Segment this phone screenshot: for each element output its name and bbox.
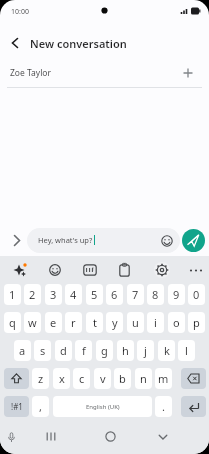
- staticText: 4: [70, 287, 77, 302]
- staticText: 9: [173, 287, 180, 302]
- button[interactable]: [155, 263, 169, 277]
- staticText: d: [60, 343, 67, 358]
- button[interactable]: i: [147, 312, 164, 333]
- button[interactable]: w: [24, 312, 41, 333]
- staticText: !#1: [11, 401, 23, 412]
- staticText: Hey, what's up?: [38, 235, 93, 245]
- button[interactable]: [83, 264, 97, 276]
- button[interactable]: 3: [45, 284, 62, 305]
- staticText: e: [50, 315, 57, 330]
- staticText: English (UK): [86, 403, 120, 411]
- staticText: 0: [193, 287, 200, 302]
- button[interactable]: ,: [32, 396, 49, 417]
- button[interactable]: f: [75, 340, 92, 361]
- staticText: x: [59, 371, 65, 386]
- staticText: .: [162, 399, 165, 414]
- staticText: m: [158, 371, 169, 386]
- button[interactable]: x: [53, 368, 70, 389]
- staticText: r: [71, 315, 76, 330]
- staticText: s: [40, 343, 46, 358]
- button[interactable]: h: [117, 340, 134, 361]
- button[interactable]: Hey, what's up?: [27, 228, 180, 253]
- button[interactable]: 6: [106, 284, 123, 305]
- button[interactable]: z: [32, 368, 49, 389]
- button[interactable]: 1: [4, 284, 21, 305]
- button[interactable]: a: [14, 340, 31, 361]
- button[interactable]: 5: [86, 284, 103, 305]
- button[interactable]: r: [65, 312, 82, 333]
- staticText: 8: [152, 287, 159, 302]
- button[interactable]: v: [94, 368, 111, 389]
- button[interactable]: p: [188, 312, 205, 333]
- staticText: i: [154, 315, 157, 330]
- staticText: 2: [29, 287, 36, 302]
- button[interactable]: [183, 68, 193, 78]
- staticText: w: [28, 315, 37, 330]
- button[interactable]: [7, 432, 16, 444]
- button[interactable]: 8: [147, 284, 164, 305]
- button[interactable]: [13, 263, 27, 277]
- button[interactable]: [4, 368, 29, 389]
- staticText: b: [119, 371, 126, 386]
- staticText: v: [100, 371, 106, 386]
- button[interactable]: !#1: [4, 396, 29, 417]
- button[interactable]: [12, 234, 22, 247]
- staticText: k: [164, 343, 170, 358]
- staticText: 7: [132, 287, 139, 302]
- button[interactable]: .: [155, 396, 172, 417]
- staticText: n: [140, 371, 147, 386]
- button[interactable]: t: [86, 312, 103, 333]
- button[interactable]: c: [73, 368, 90, 389]
- staticText: 5: [91, 287, 98, 302]
- staticText: New conversation: [30, 36, 127, 51]
- button[interactable]: y: [106, 312, 123, 333]
- button[interactable]: [105, 431, 116, 442]
- button[interactable]: k: [158, 340, 175, 361]
- button[interactable]: 7: [127, 284, 144, 305]
- staticText: 1: [9, 287, 16, 302]
- button[interactable]: g: [96, 340, 113, 361]
- staticText: Zoe Taylor: [10, 67, 52, 79]
- button[interactable]: [182, 229, 205, 252]
- button[interactable]: 2: [24, 284, 41, 305]
- staticText: t: [93, 315, 97, 330]
- button[interactable]: m: [155, 368, 172, 389]
- staticText: j: [144, 343, 147, 358]
- staticText: 6: [111, 287, 118, 302]
- button[interactable]: [158, 434, 168, 441]
- button[interactable]: 9: [168, 284, 185, 305]
- button[interactable]: [181, 368, 206, 389]
- staticText: q: [9, 315, 16, 330]
- button[interactable]: [46, 432, 56, 441]
- staticText: c: [79, 371, 85, 386]
- staticText: h: [122, 343, 129, 358]
- staticText: ,: [39, 399, 42, 414]
- button[interactable]: [119, 263, 130, 277]
- button[interactable]: n: [135, 368, 152, 389]
- staticText: y: [112, 315, 118, 330]
- button[interactable]: English (UK): [53, 396, 152, 417]
- staticText: g: [101, 343, 108, 358]
- button[interactable]: b: [114, 368, 131, 389]
- staticText: u: [132, 315, 139, 330]
- button[interactable]: [10, 37, 20, 49]
- button[interactable]: q: [4, 312, 21, 333]
- button[interactable]: l: [178, 340, 195, 361]
- button[interactable]: o: [168, 312, 185, 333]
- button[interactable]: d: [55, 340, 72, 361]
- staticText: f: [82, 343, 86, 358]
- staticText: o: [173, 315, 180, 330]
- button[interactable]: [49, 264, 61, 276]
- button[interactable]: [189, 269, 203, 272]
- staticText: p: [193, 315, 200, 330]
- button[interactable]: [181, 396, 206, 417]
- button[interactable]: j: [137, 340, 154, 361]
- button[interactable]: 4: [65, 284, 82, 305]
- staticText: a: [19, 343, 26, 358]
- staticText: l: [185, 343, 188, 358]
- staticText: z: [38, 371, 44, 386]
- button[interactable]: s: [34, 340, 51, 361]
- button[interactable]: e: [45, 312, 62, 333]
- button[interactable]: 0: [188, 284, 205, 305]
- button[interactable]: u: [127, 312, 144, 333]
